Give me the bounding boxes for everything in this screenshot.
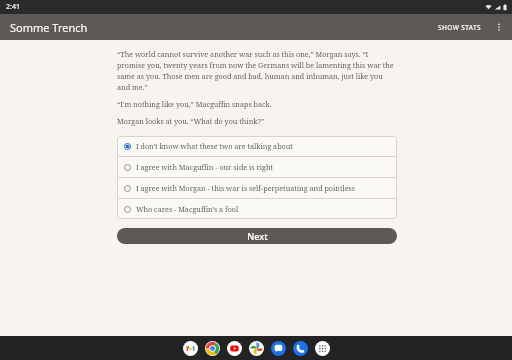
button[interactable]: Gmail [183,341,198,356]
button[interactable]: I agree with Morgan - this war is self-p… [117,178,397,198]
staticText: Morgan looks at you. “What do you think?… [117,116,265,126]
staticText: Somme Trench [10,20,88,35]
staticText: I don't know what these two are talking … [136,141,293,151]
staticText: Next [247,230,268,242]
button[interactable]: I don't know what these two are talking … [117,136,397,156]
button[interactable]: All apps [315,341,330,356]
button[interactable]: Who cares - Macguffin's a fool [117,199,397,219]
staticText: “I'm nothing like you,” Macguffin snaps … [117,99,272,109]
button[interactable]: Phone [293,341,308,356]
button[interactable]: SHOW STATS [432,17,488,38]
button[interactable]: Chrome [205,341,220,356]
staticText: I agree with Morgan - this war is self-p… [136,183,356,193]
staticText: “The world cannot survive another war su… [117,49,397,92]
button[interactable]: Photos [249,341,264,356]
button[interactable]: YouTube [227,341,242,356]
staticText: SHOW STATS [438,23,482,32]
staticText: I agree with Macguffin - our side is rig… [136,162,274,172]
button[interactable]: Next [117,228,397,244]
staticText: 2:41 [6,2,20,12]
button[interactable]: More options [488,16,510,38]
staticText: Who cares - Macguffin's a fool [136,204,239,214]
button[interactable]: Messages [271,341,286,356]
button[interactable]: I agree with Macguffin - our side is rig… [117,157,397,177]
